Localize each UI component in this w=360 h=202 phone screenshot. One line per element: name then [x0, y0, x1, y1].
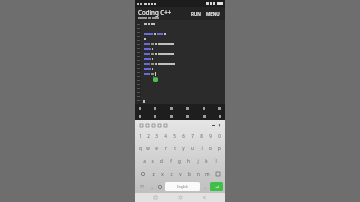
- button[interactable]: Symbol key: [217, 106, 222, 111]
- staticText: d: [160, 158, 163, 164]
- button[interactable]: q: [137, 143, 143, 153]
- button[interactable]: Settings: [156, 122, 162, 128]
- button[interactable]: Symbol key: [185, 106, 190, 111]
- button[interactable]: s: [149, 155, 156, 166]
- button[interactable]: Backspace: [213, 168, 223, 179]
- staticText: g: [178, 158, 181, 164]
- button[interactable]: w: [145, 143, 151, 153]
- button[interactable]: g: [176, 155, 183, 166]
- staticText: j: [197, 158, 199, 164]
- button[interactable]: English: [165, 182, 200, 191]
- button[interactable]: 3: [153, 131, 160, 141]
- staticText: English: [177, 185, 188, 189]
- button[interactable]: t: [171, 143, 178, 153]
- button[interactable]: More options: [210, 122, 216, 128]
- staticText: r: [165, 145, 167, 151]
- staticText: f: [170, 158, 172, 164]
- staticText: q: [139, 145, 142, 151]
- staticText: 8: [200, 133, 203, 139]
- button[interactable]: .: [202, 182, 208, 191]
- button[interactable]: Enter: [210, 182, 223, 191]
- button[interactable]: 1: [137, 131, 143, 141]
- staticText: s: [151, 158, 154, 164]
- staticText: x: [161, 171, 164, 177]
- staticText: b: [188, 171, 191, 177]
- button[interactable]: 7: [189, 131, 196, 141]
- button[interactable]: b: [186, 168, 193, 179]
- button[interactable]: d: [158, 155, 165, 166]
- staticText: .: [204, 184, 206, 190]
- button[interactable]: Home: [177, 194, 184, 201]
- button[interactable]: r: [162, 143, 169, 153]
- staticText: 4: [164, 133, 167, 139]
- button[interactable]: Symbol key: [138, 114, 142, 119]
- button[interactable]: !1?: [137, 182, 147, 191]
- staticText: o: [209, 145, 212, 151]
- staticText: 5: [173, 133, 176, 139]
- button[interactable]: 8: [198, 131, 205, 141]
- staticText: k: [205, 158, 208, 164]
- staticText: t: [174, 145, 176, 151]
- button[interactable]: Sticker: [162, 122, 168, 128]
- staticText: 6: [182, 133, 185, 139]
- button[interactable]: z: [150, 168, 157, 179]
- button[interactable]: Symbol key: [153, 106, 157, 111]
- button[interactable]: Back: [201, 194, 208, 201]
- button[interactable]: Emoji: [157, 182, 163, 191]
- button[interactable]: v: [177, 168, 184, 179]
- button[interactable]: Clipboard: [144, 122, 150, 128]
- staticText: 2: [147, 133, 150, 139]
- button[interactable]: RUN: [189, 9, 203, 19]
- button[interactable]: o: [207, 143, 214, 153]
- button[interactable]: Back: [138, 122, 144, 128]
- button[interactable]: n: [195, 168, 202, 179]
- button[interactable]: ,: [149, 182, 155, 191]
- button[interactable]: 5: [171, 131, 178, 141]
- staticText: e: [155, 145, 158, 151]
- button[interactable]: p: [216, 143, 223, 153]
- button[interactable]: Symbol key: [202, 114, 207, 119]
- staticText: 0: [218, 133, 221, 139]
- staticText: ,: [151, 184, 153, 190]
- button[interactable]: Symbol key: [138, 106, 142, 111]
- staticText: MENU: [206, 11, 220, 17]
- button[interactable]: x: [159, 168, 166, 179]
- button[interactable]: e: [153, 143, 160, 153]
- staticText: RUN: [191, 11, 201, 17]
- staticText: n: [197, 171, 200, 177]
- staticText: 3: [155, 133, 158, 139]
- button[interactable]: u: [189, 143, 196, 153]
- staticText: p: [218, 145, 221, 151]
- button[interactable]: m: [204, 168, 211, 179]
- button[interactable]: f: [167, 155, 174, 166]
- button[interactable]: 2: [145, 131, 151, 141]
- button[interactable]: 4: [162, 131, 169, 141]
- button[interactable]: MENU: [204, 9, 222, 19]
- button[interactable]: y: [180, 143, 187, 153]
- button[interactable]: Symbol key: [218, 114, 222, 119]
- staticText: h: [187, 158, 190, 164]
- button[interactable]: a: [141, 155, 147, 166]
- button[interactable]: 6: [180, 131, 187, 141]
- staticText: z: [152, 171, 155, 177]
- button[interactable]: i: [198, 143, 205, 153]
- button[interactable]: k: [203, 155, 210, 166]
- staticText: 9: [209, 133, 212, 139]
- button[interactable]: c: [168, 168, 175, 179]
- button[interactable]: j: [194, 155, 201, 166]
- staticText: a: [143, 158, 146, 164]
- button[interactable]: h: [185, 155, 192, 166]
- button[interactable]: Recents: [152, 194, 159, 201]
- button[interactable]: 0: [216, 131, 223, 141]
- button[interactable]: l: [212, 155, 219, 166]
- button[interactable]: Shift: [137, 168, 148, 179]
- button[interactable]: Symbol key: [153, 114, 157, 119]
- button[interactable]: 9: [207, 131, 214, 141]
- button[interactable]: Symbol key: [169, 114, 174, 119]
- button[interactable]: Voice input: [216, 122, 222, 128]
- staticText: !1?: [140, 185, 144, 189]
- button[interactable]: Symbol key: [202, 106, 206, 111]
- button[interactable]: Symbol key: [185, 114, 190, 119]
- button[interactable]: Symbol key: [169, 106, 174, 111]
- button[interactable]: GIF: [150, 122, 156, 128]
